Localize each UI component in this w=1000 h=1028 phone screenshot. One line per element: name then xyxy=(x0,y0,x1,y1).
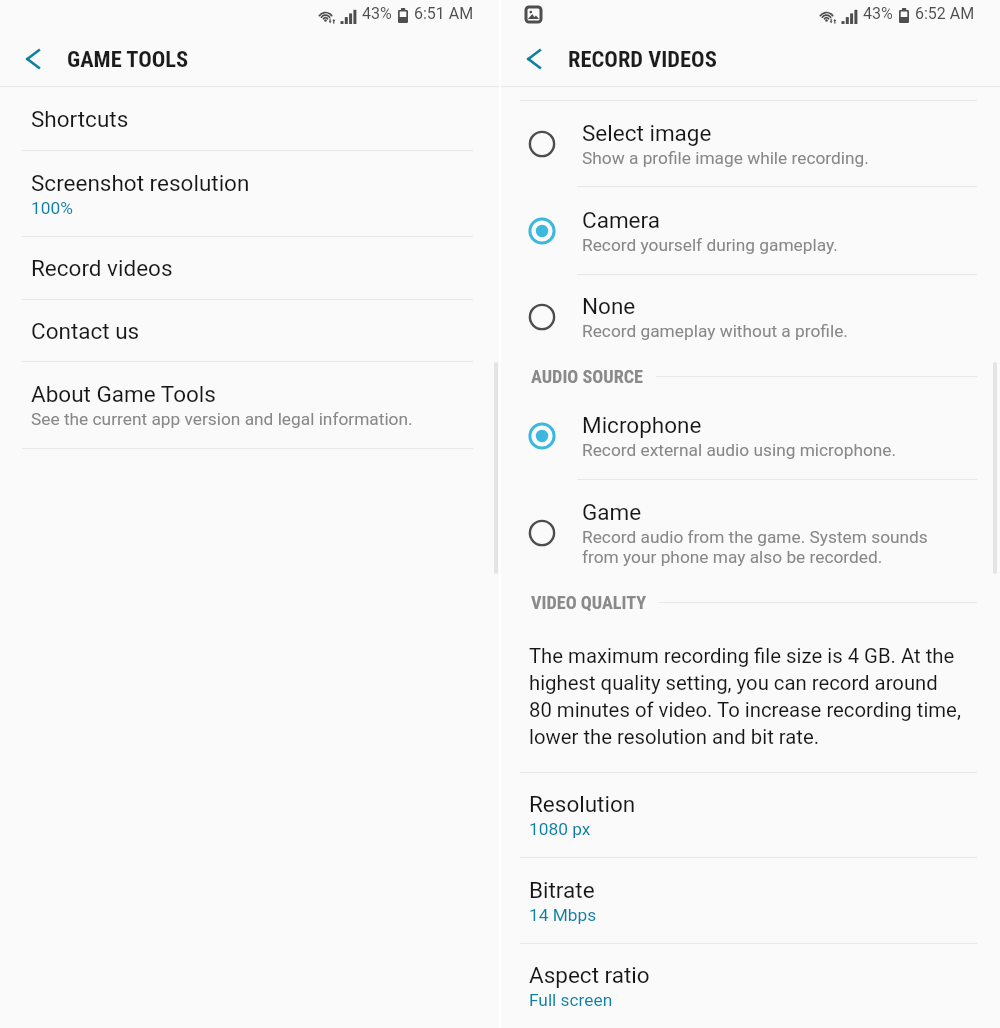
staticText: About Game Tools xyxy=(31,381,216,407)
button[interactable]: Navigate up xyxy=(11,37,55,81)
staticText: GAME TOOLS xyxy=(67,46,189,72)
staticText: Aspect ratio xyxy=(529,962,650,988)
staticText: Shortcuts xyxy=(31,106,129,132)
button[interactable]: Microphone xyxy=(501,393,1000,479)
staticText: RECORD VIDEOS xyxy=(568,46,717,72)
button[interactable]: Game xyxy=(501,480,1000,585)
staticText: Camera xyxy=(582,207,660,233)
staticText: Record audio from the game. System sound… xyxy=(582,527,962,567)
staticText: Full screen xyxy=(529,990,613,1010)
button[interactable]: None xyxy=(501,275,1000,359)
button[interactable]: Select image xyxy=(501,101,1000,186)
staticText: 6:51 AM xyxy=(414,4,474,23)
button[interactable]: Navigate up xyxy=(512,37,556,81)
staticText: Record yourself during gameplay. xyxy=(582,235,838,255)
staticText: 14 Mbps xyxy=(529,905,597,925)
staticText: The maximum recording file size is 4 GB.… xyxy=(529,642,965,750)
staticText: 43% xyxy=(863,4,893,23)
staticText: See the current app version and legal in… xyxy=(31,409,413,429)
staticText: 100% xyxy=(31,198,73,218)
button[interactable]: Bitrate xyxy=(501,858,1000,943)
staticText: None xyxy=(582,293,636,319)
staticText: Contact us xyxy=(31,318,140,344)
button[interactable]: Camera xyxy=(501,187,1000,274)
staticText: 43% xyxy=(362,4,392,23)
button[interactable]: Contact us xyxy=(0,300,499,361)
staticText: 6:52 AM xyxy=(915,4,975,23)
staticText: Game xyxy=(582,499,642,525)
staticText: Record gameplay without a profile. xyxy=(582,321,848,341)
staticText: AUDIO SOURCE xyxy=(531,366,644,387)
staticText: 1080 px xyxy=(529,819,591,839)
staticText: Select image xyxy=(582,120,712,146)
staticText: Resolution xyxy=(529,791,636,817)
button[interactable]: Resolution xyxy=(501,773,1000,857)
button[interactable]: Aspect ratio xyxy=(501,944,1000,1028)
staticText: VIDEO QUALITY xyxy=(531,592,647,613)
staticText: Record external audio using microphone. xyxy=(582,440,897,460)
button[interactable]: Record videos xyxy=(0,237,499,299)
button[interactable]: About Game Tools xyxy=(0,362,499,448)
button[interactable]: Shortcuts xyxy=(0,87,499,150)
staticText: Screenshot resolution xyxy=(31,170,250,196)
staticText: Bitrate xyxy=(529,877,595,903)
staticText: Microphone xyxy=(582,412,702,438)
staticText: Record videos xyxy=(31,255,173,281)
button[interactable]: Screenshot resolution xyxy=(0,151,499,236)
staticText: Show a profile image while recording. xyxy=(582,148,869,168)
